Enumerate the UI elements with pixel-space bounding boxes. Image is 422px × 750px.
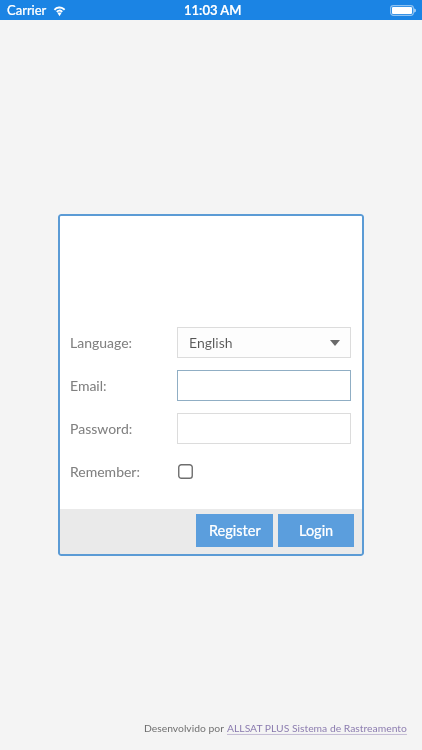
button[interactable]: English (177, 327, 351, 358)
button[interactable]: Password input (177, 413, 351, 444)
staticText: Desenvolvido por (144, 722, 227, 734)
staticText: Register (209, 522, 261, 539)
button[interactable]: ALLSAT PLUS Sistema de Rastreamento (227, 722, 407, 734)
staticText: Login (299, 522, 334, 539)
staticText: 11:03 AM (184, 2, 242, 18)
other: Battery full (390, 5, 416, 16)
button[interactable]: Register (196, 514, 273, 547)
staticText: Carrier (7, 2, 47, 18)
other: Wi-Fi signal (52, 4, 67, 16)
button[interactable]: Email input (177, 370, 351, 401)
button[interactable]: Login (278, 514, 354, 547)
staticText: English (189, 334, 233, 351)
staticText: Password: (70, 420, 133, 437)
staticText: Remember: (70, 463, 140, 480)
button[interactable]: Remember me (177, 456, 217, 487)
staticText: Email: (70, 377, 107, 394)
staticText: Language: (70, 334, 133, 351)
